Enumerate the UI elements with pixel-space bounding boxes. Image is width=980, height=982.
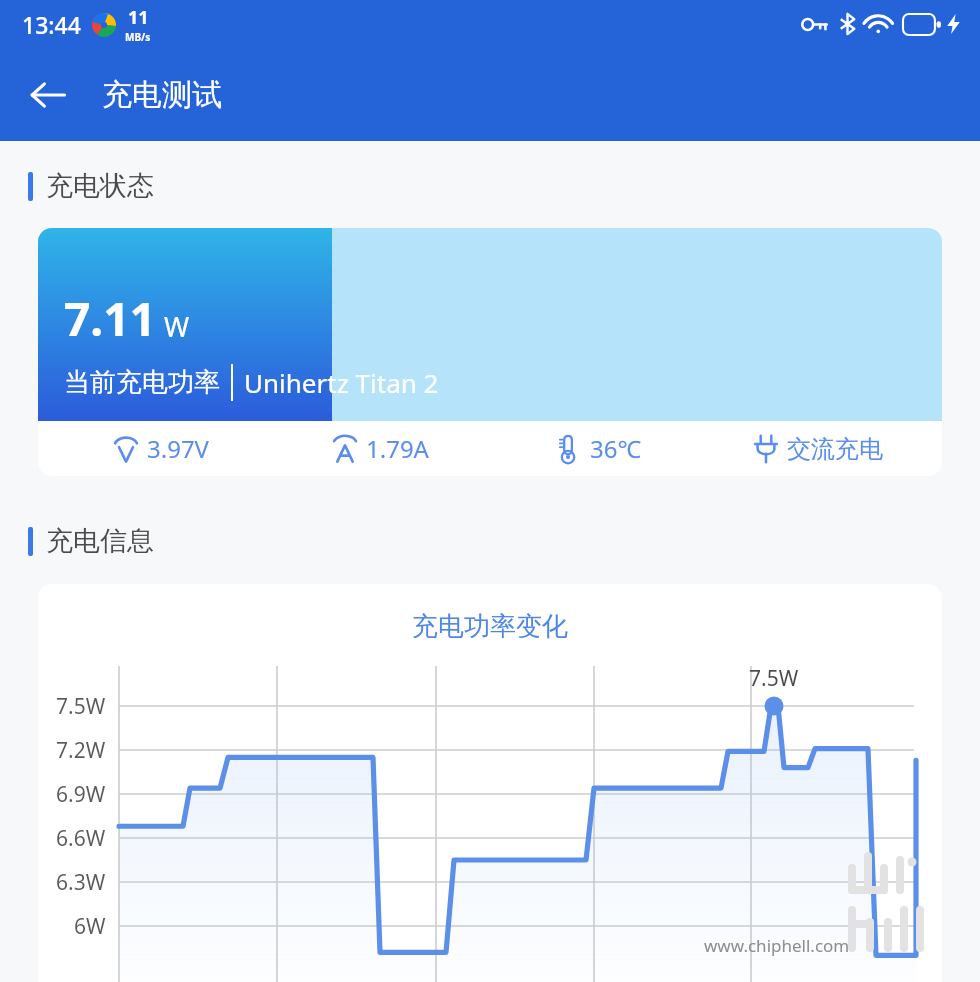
button[interactable]: Back <box>14 61 82 129</box>
button[interactable]: 7.11 <box>38 228 942 476</box>
staticText: 11 <box>128 5 149 30</box>
button[interactable] <box>38 584 942 982</box>
staticText: 交流充电 <box>787 434 883 464</box>
staticText: 当前充电功率 <box>64 366 220 399</box>
staticText: 3.97V <box>147 432 210 465</box>
staticText: 36℃ <box>590 432 642 465</box>
staticText: 7.11 <box>64 287 156 350</box>
button[interactable]: 充电状态 <box>28 169 980 203</box>
staticText: 充电测试 <box>102 76 222 114</box>
staticText: 充电信息 <box>46 524 154 558</box>
button[interactable]: 3.97V <box>52 421 271 476</box>
staticText: 充电状态 <box>46 169 154 203</box>
staticText: W <box>164 308 190 345</box>
button[interactable]: 36℃ <box>490 421 709 476</box>
button[interactable]: 1.79A <box>271 421 490 476</box>
staticText: MB/s <box>125 30 151 44</box>
button[interactable]: 交流充电 <box>709 421 928 476</box>
staticText: 13:44 <box>22 9 81 40</box>
staticText: Unihertz Titan 2 <box>244 365 439 400</box>
button[interactable]: 充电信息 <box>28 524 980 558</box>
staticText: 1.79A <box>366 432 429 465</box>
